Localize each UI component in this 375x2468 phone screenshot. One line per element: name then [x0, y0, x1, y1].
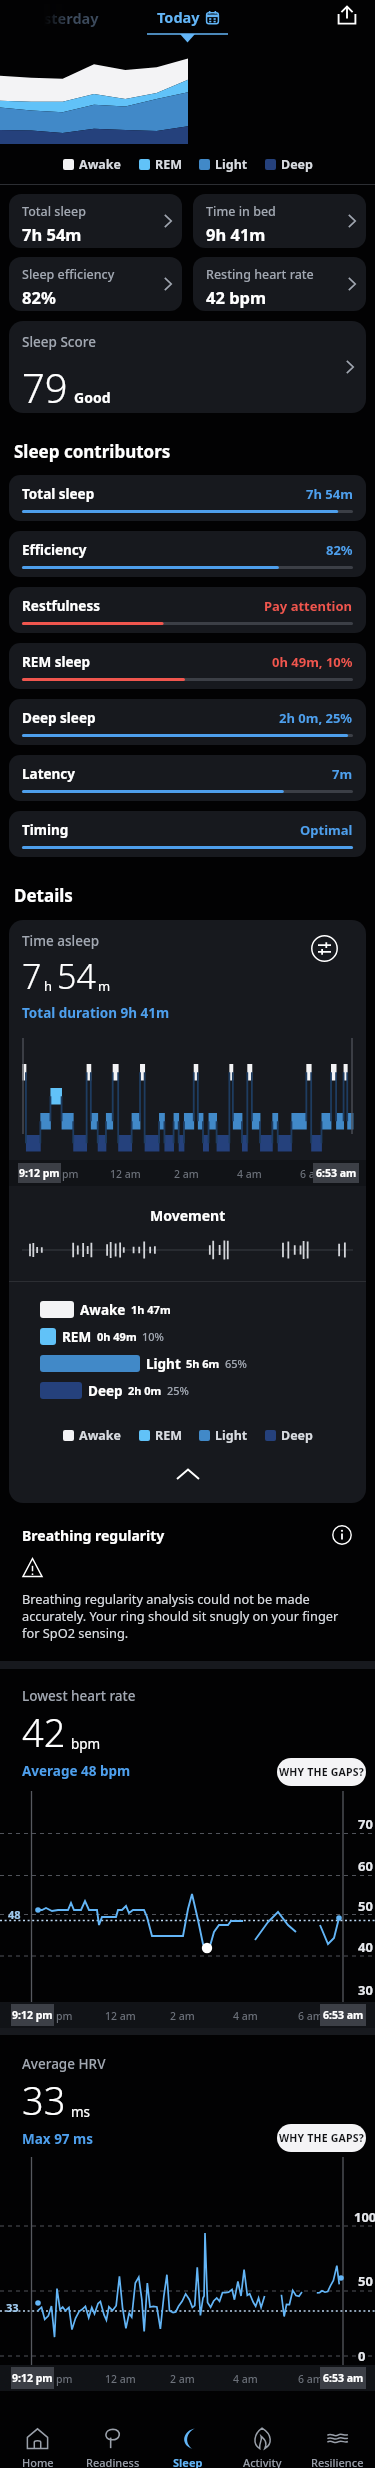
staticText: Breathing regularity analysis could not …	[22, 1590, 353, 1641]
staticText: Optimal	[300, 821, 353, 839]
staticText: 82%	[326, 541, 353, 559]
staticText: 9:12 pm	[12, 2371, 53, 2385]
button[interactable]: Sleep Score	[9, 321, 366, 413]
staticText: 4 am	[233, 2372, 258, 2386]
staticText: bpm	[71, 1735, 101, 1753]
staticText: 54	[57, 953, 96, 999]
button[interactable]: Total sleep	[9, 194, 182, 248]
staticText: Pay attention	[264, 597, 353, 615]
staticText: 7h 54m	[22, 223, 82, 245]
staticText: 60	[358, 1857, 373, 1875]
staticText: Average 48 bpm	[22, 1762, 131, 1780]
button[interactable]: Time in bed	[193, 194, 366, 248]
staticText: 100	[354, 2208, 375, 2226]
staticText: Readiness	[86, 2455, 140, 2468]
staticText: 2 am	[170, 2009, 195, 2023]
staticText: Awake	[79, 156, 122, 173]
staticText: 33	[6, 2300, 19, 2315]
button[interactable]: Latency	[9, 755, 366, 801]
staticText: 42 bpm	[206, 286, 267, 308]
staticText: 7m	[332, 765, 353, 783]
staticText: Deep	[281, 156, 313, 173]
button[interactable]: Readiness	[75, 2391, 150, 2468]
staticText: 79	[22, 360, 68, 413]
staticText: 12 am	[105, 2372, 136, 2386]
button[interactable]: WHY THE GAPS?	[277, 2124, 366, 2152]
staticText: 50	[358, 2272, 373, 2290]
staticText: Latency	[22, 765, 76, 783]
button[interactable]: sterday	[44, 8, 99, 28]
staticText: 6:53 am	[323, 2371, 364, 2385]
staticText: 33	[22, 2074, 66, 2126]
staticText: 2 am	[174, 1167, 199, 1181]
staticText: 6 am	[298, 2372, 323, 2386]
staticText: 2h 0m, 25%	[279, 709, 353, 727]
staticText: Deep	[88, 1382, 123, 1400]
staticText: 30	[358, 1981, 373, 1999]
button[interactable]: WHY THE GAPS?	[277, 1758, 366, 1786]
button[interactable]: Activity	[225, 2391, 300, 2468]
staticText: Average HRV	[22, 2055, 106, 2073]
staticText: 50	[358, 1897, 373, 1915]
staticText: 6:53 am	[323, 2008, 364, 2022]
button[interactable]: Total sleep	[9, 475, 366, 521]
button[interactable]: Restfulness	[9, 587, 366, 633]
staticText: 10%	[142, 1329, 164, 1344]
staticText: 82%	[22, 286, 56, 308]
button[interactable]: REM sleep	[9, 643, 366, 689]
button[interactable]: Adjust chart	[310, 934, 338, 962]
staticText: 6 am	[300, 1167, 325, 1181]
staticText: 0h 49m, 10%	[272, 653, 353, 671]
button[interactable]: Share	[333, 1, 361, 29]
staticText: Light	[215, 1427, 248, 1444]
staticText: Lowest heart rate	[22, 1687, 136, 1705]
button[interactable]: Resting heart rate	[193, 257, 366, 311]
staticText: 70	[358, 1815, 373, 1833]
staticText: Light	[146, 1355, 181, 1373]
staticText: Deep sleep	[22, 709, 96, 727]
staticText: 12 am	[105, 2009, 136, 2023]
staticText: Movement	[150, 1206, 226, 1225]
staticText: h	[44, 977, 53, 995]
staticText: 6:53 am	[316, 1166, 357, 1180]
staticText: 5h 6m	[186, 1356, 220, 1371]
button[interactable]: Today	[147, 0, 228, 42]
staticText: 6 am	[298, 2009, 323, 2023]
staticText: 9:12 pm	[19, 1166, 60, 1180]
staticText: REM	[62, 1328, 92, 1346]
staticText: Resilience	[311, 2455, 364, 2468]
staticText: Efficiency	[22, 541, 87, 559]
staticText: 2 am	[170, 2372, 195, 2386]
staticText: 0h 49m	[97, 1329, 137, 1344]
button[interactable]: Collapse details	[9, 1454, 366, 1494]
staticText: Sleep	[173, 2455, 203, 2468]
button[interactable]: Efficiency	[9, 531, 366, 577]
button[interactable]: Timing	[9, 811, 366, 857]
staticText: pm	[56, 2372, 73, 2386]
button[interactable]: Sleep efficiency	[9, 257, 182, 311]
staticText: 0	[358, 2347, 366, 2365]
staticText: Activity	[243, 2455, 282, 2468]
staticText: WHY THE GAPS?	[279, 1765, 364, 1779]
staticText: 1h 47m	[131, 1302, 171, 1317]
staticText: Time asleep	[22, 932, 100, 950]
button[interactable]: Info	[331, 1524, 353, 1546]
staticText: Resting heart rate	[206, 266, 314, 283]
staticText: Awake	[79, 1427, 122, 1444]
staticText: Sleep Score	[22, 333, 96, 351]
button[interactable]: Resilience	[300, 2391, 375, 2468]
staticText: 42	[22, 1706, 66, 1758]
staticText: Deep	[281, 1427, 313, 1444]
staticText: 40	[358, 1938, 373, 1956]
staticText: 65%	[225, 1356, 247, 1371]
staticText: Total duration 9h 41m	[22, 1004, 170, 1022]
button[interactable]: Sleep	[150, 2391, 225, 2468]
button[interactable]: Deep sleep	[9, 699, 366, 745]
staticText: 4 am	[237, 1167, 262, 1181]
staticText: REM	[155, 1427, 182, 1444]
staticText: 9:12 pm	[12, 2008, 53, 2022]
button[interactable]: Home	[0, 2391, 75, 2468]
staticText: sterday	[44, 8, 99, 28]
staticText: Total sleep	[22, 485, 95, 503]
staticText: m	[98, 977, 111, 995]
